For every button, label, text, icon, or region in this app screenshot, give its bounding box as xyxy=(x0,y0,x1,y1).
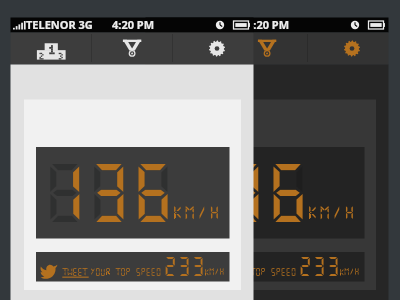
staticText: TWEET xyxy=(197,267,222,277)
staticText: KM/H xyxy=(172,204,222,221)
staticText: 888 xyxy=(177,154,310,228)
staticText: 233 xyxy=(163,254,205,277)
staticText: 4:20 PM xyxy=(112,17,155,32)
staticText: KM/H xyxy=(204,267,225,276)
staticText: KM/H xyxy=(339,267,360,276)
staticText: TELENOR 3G xyxy=(26,17,93,32)
staticText: 233 xyxy=(298,254,340,277)
staticText: 888 xyxy=(42,154,175,228)
staticText: 136 xyxy=(42,154,175,228)
staticText: YOUR TOP SPEED xyxy=(225,267,296,276)
staticText: YOUR TOP SPEED xyxy=(90,267,161,276)
staticText: TELENOR 3G xyxy=(161,17,228,32)
staticText: KM/H xyxy=(307,204,357,221)
staticText: 136 xyxy=(177,154,310,228)
staticText: 4:20 PM xyxy=(247,17,290,32)
staticText: TWEET xyxy=(62,267,87,277)
